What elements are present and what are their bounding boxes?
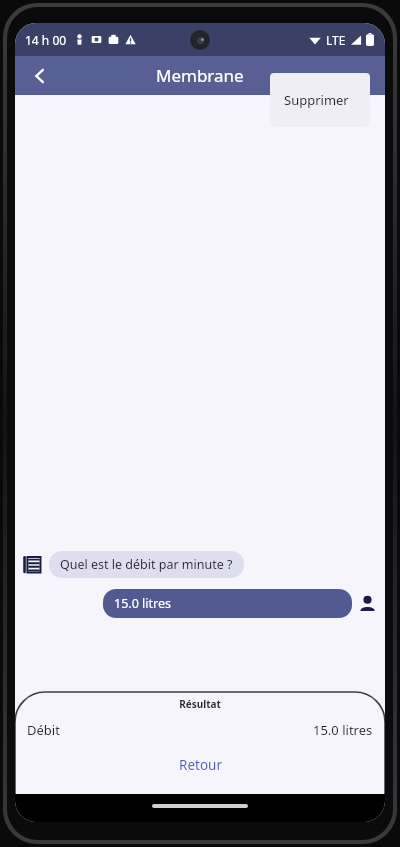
staticText: LTE [326, 32, 346, 48]
staticText: Quel est le débit par minute ? [60, 556, 233, 573]
staticText: 15.0 litres [114, 595, 171, 612]
button[interactable]: Retour [21, 57, 59, 95]
staticText: Débit [27, 721, 60, 739]
staticText: Résultat [15, 697, 385, 711]
button[interactable]: Quel est le débit par minute ? [49, 551, 244, 578]
staticText: Supprimer [284, 91, 349, 109]
staticText: Retour [179, 756, 222, 774]
staticText: 15.0 litres [313, 721, 373, 739]
staticText: 14 h 00 [25, 32, 67, 48]
button[interactable]: 15.0 litres [103, 589, 352, 618]
button[interactable]: Retour [15, 750, 385, 780]
staticText: Membrane [156, 64, 244, 87]
button[interactable]: Supprimer [270, 73, 370, 127]
